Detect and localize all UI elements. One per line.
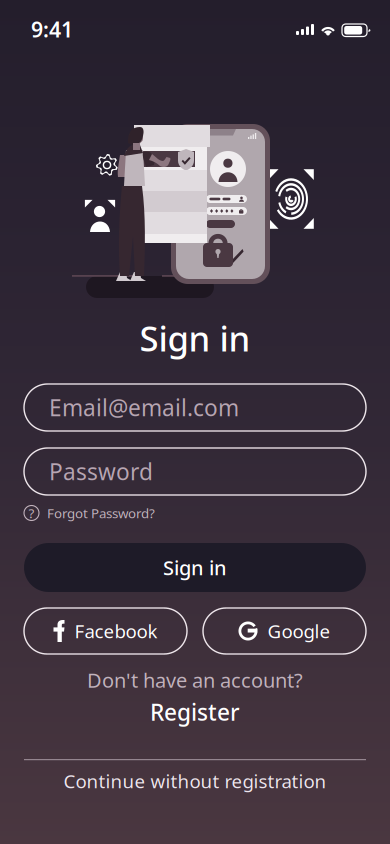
staticText: 9:41 bbox=[31, 15, 73, 43]
staticText: ? bbox=[28, 504, 34, 522]
button[interactable]: Password bbox=[24, 448, 366, 495]
staticText: Register bbox=[150, 697, 240, 727]
staticText: Sign in bbox=[139, 315, 250, 361]
button[interactable]: Email@email.com bbox=[24, 384, 366, 431]
button[interactable]: ? bbox=[24, 502, 366, 524]
button[interactable]: Register bbox=[0, 698, 390, 726]
button[interactable]: Facebook bbox=[24, 608, 187, 654]
staticText: Google bbox=[267, 619, 330, 643]
staticText: Sign in bbox=[163, 554, 227, 581]
button[interactable]: Sign in bbox=[24, 543, 366, 592]
staticText: Password bbox=[49, 456, 153, 486]
button[interactable]: Continue without registration bbox=[0, 769, 390, 793]
staticText: Continue without registration bbox=[63, 769, 326, 793]
staticText: Forgot Password? bbox=[47, 504, 155, 522]
staticText: Facebook bbox=[74, 619, 157, 643]
button[interactable]: Google bbox=[203, 608, 366, 654]
staticText: Email@email.com bbox=[49, 392, 239, 422]
staticText: Don't have an account? bbox=[87, 667, 303, 693]
